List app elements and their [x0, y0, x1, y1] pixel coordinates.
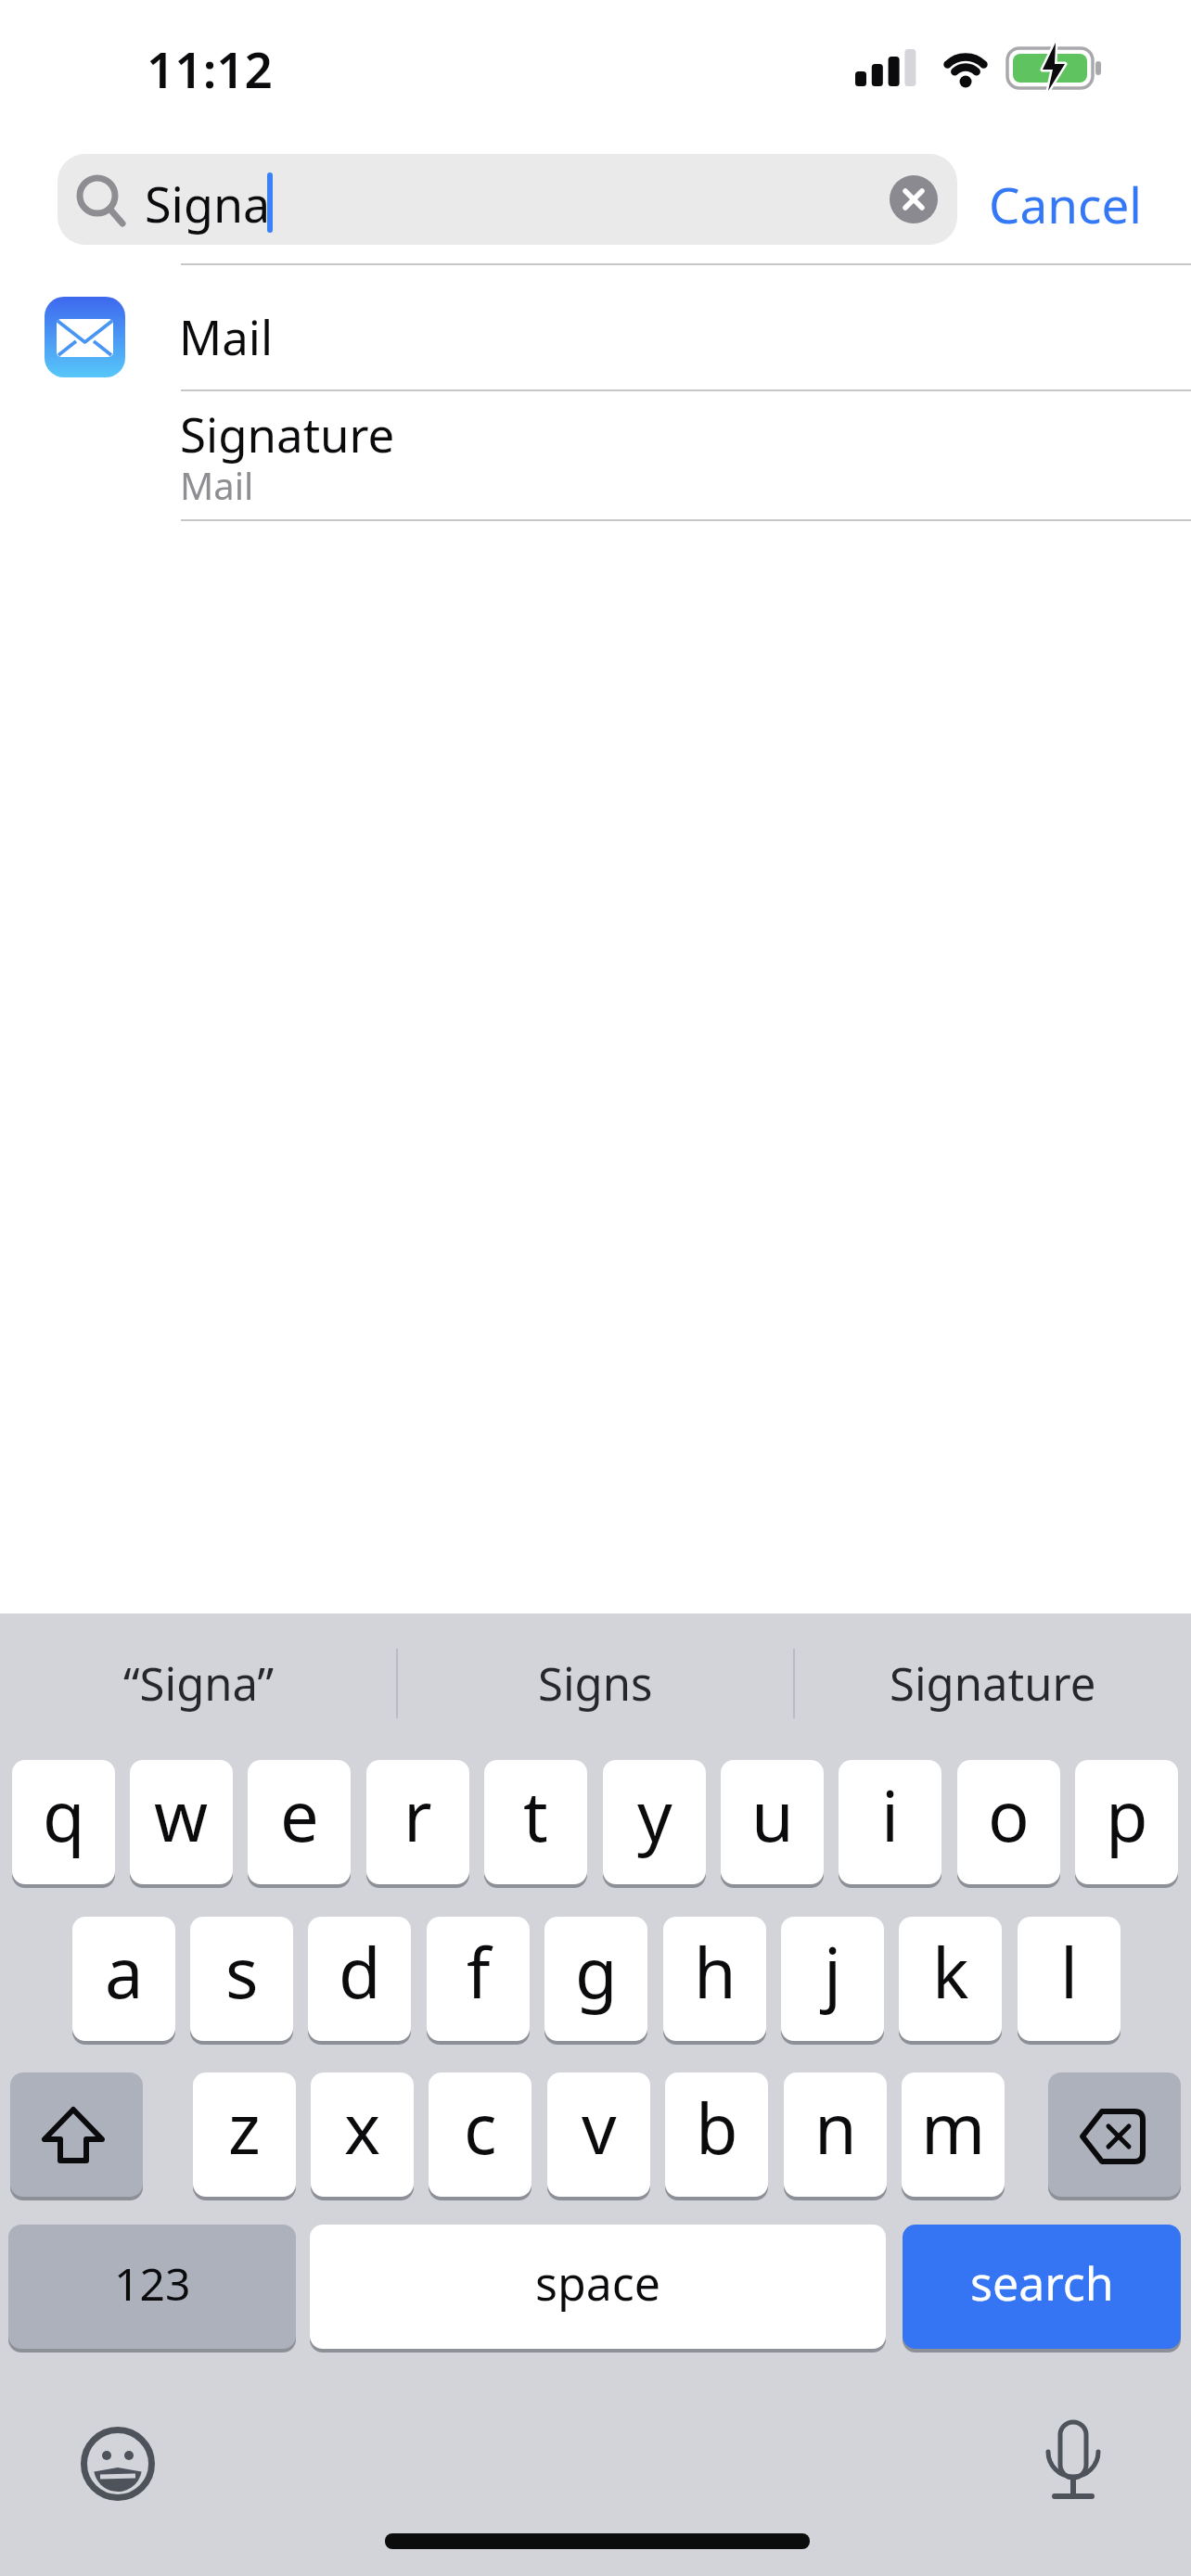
staticText: Signa: [145, 171, 271, 236]
staticText: o: [988, 1768, 1030, 1862]
staticText: h: [694, 1925, 736, 2019]
staticText: n: [814, 2081, 857, 2174]
button[interactable]: s: [190, 1917, 293, 2041]
staticText: k: [932, 1925, 969, 2019]
staticText: 11:12: [147, 35, 273, 102]
button[interactable]: o: [957, 1760, 1060, 1884]
button[interactable]: [1048, 2072, 1181, 2197]
button[interactable]: 123: [8, 2225, 296, 2349]
staticText: x: [344, 2081, 381, 2174]
button[interactable]: x: [311, 2072, 414, 2197]
button[interactable]: b: [665, 2072, 768, 2197]
button[interactable]: Signs: [397, 1613, 794, 1753]
staticText: f: [467, 1925, 491, 2019]
button[interactable]: Cancel: [980, 167, 1146, 232]
button[interactable]: w: [130, 1760, 233, 1884]
button[interactable]: [10, 2072, 143, 2197]
staticText: q: [43, 1768, 85, 1862]
button[interactable]: v: [547, 2072, 650, 2197]
button[interactable]: u: [721, 1760, 824, 1884]
button[interactable]: “Signa”: [0, 1613, 397, 1753]
staticText: Mail: [180, 460, 254, 510]
button[interactable]: q: [12, 1760, 115, 1884]
staticText: w: [154, 1768, 209, 1862]
button[interactable]: [1045, 2418, 1105, 2504]
staticText: i: [881, 1768, 900, 1862]
staticText: “Signa”: [123, 1652, 275, 1715]
staticText: v: [582, 2081, 617, 2174]
staticText: Signs: [538, 1652, 653, 1715]
button[interactable]: l: [1018, 1917, 1121, 2041]
button[interactable]: j: [781, 1917, 884, 2041]
staticText: j: [824, 1925, 842, 2019]
button[interactable]: f: [427, 1917, 530, 2041]
staticText: l: [1060, 1925, 1079, 2019]
staticText: r: [403, 1768, 432, 1862]
staticText: t: [523, 1768, 548, 1862]
button[interactable]: z: [193, 2072, 296, 2197]
button[interactable]: e: [248, 1760, 351, 1884]
button[interactable]: Mail: [0, 265, 1191, 389]
button[interactable]: y: [603, 1760, 706, 1884]
staticText: space: [535, 2251, 660, 2315]
staticText: y: [637, 1768, 672, 1862]
button[interactable]: d: [308, 1917, 411, 2041]
button[interactable]: [79, 2425, 158, 2504]
button[interactable]: i: [839, 1760, 941, 1884]
staticText: b: [696, 2081, 738, 2174]
staticText: d: [339, 1925, 381, 2019]
staticText: 123: [114, 2253, 191, 2314]
staticText: Signature: [890, 1652, 1096, 1715]
button[interactable]: g: [544, 1917, 647, 2041]
button[interactable]: Signature: [0, 391, 1191, 519]
staticText: a: [105, 1925, 144, 2019]
button[interactable]: n: [784, 2072, 887, 2197]
button[interactable]: t: [484, 1760, 587, 1884]
button[interactable]: k: [899, 1917, 1002, 2041]
staticText: z: [228, 2081, 261, 2174]
button[interactable]: Signature: [794, 1613, 1191, 1753]
staticText: search: [970, 2251, 1114, 2315]
staticText: s: [225, 1925, 259, 2019]
staticText: m: [921, 2081, 986, 2174]
staticText: p: [1106, 1768, 1148, 1862]
staticText: g: [575, 1925, 618, 2019]
button[interactable]: a: [72, 1917, 175, 2041]
button[interactable]: h: [663, 1917, 766, 2041]
staticText: e: [280, 1768, 319, 1862]
staticText: Signature: [180, 402, 395, 465]
button[interactable]: m: [902, 2072, 1005, 2197]
button[interactable]: [890, 175, 938, 223]
button[interactable]: c: [429, 2072, 531, 2197]
staticText: c: [464, 2081, 497, 2174]
button[interactable]: search: [903, 2225, 1181, 2349]
button[interactable]: p: [1075, 1760, 1178, 1884]
staticText: Cancel: [989, 171, 1142, 236]
staticText: u: [751, 1768, 794, 1862]
button[interactable]: space: [310, 2225, 886, 2349]
staticText: Mail: [179, 304, 274, 368]
button[interactable]: r: [366, 1760, 469, 1884]
button[interactable]: [58, 154, 957, 245]
